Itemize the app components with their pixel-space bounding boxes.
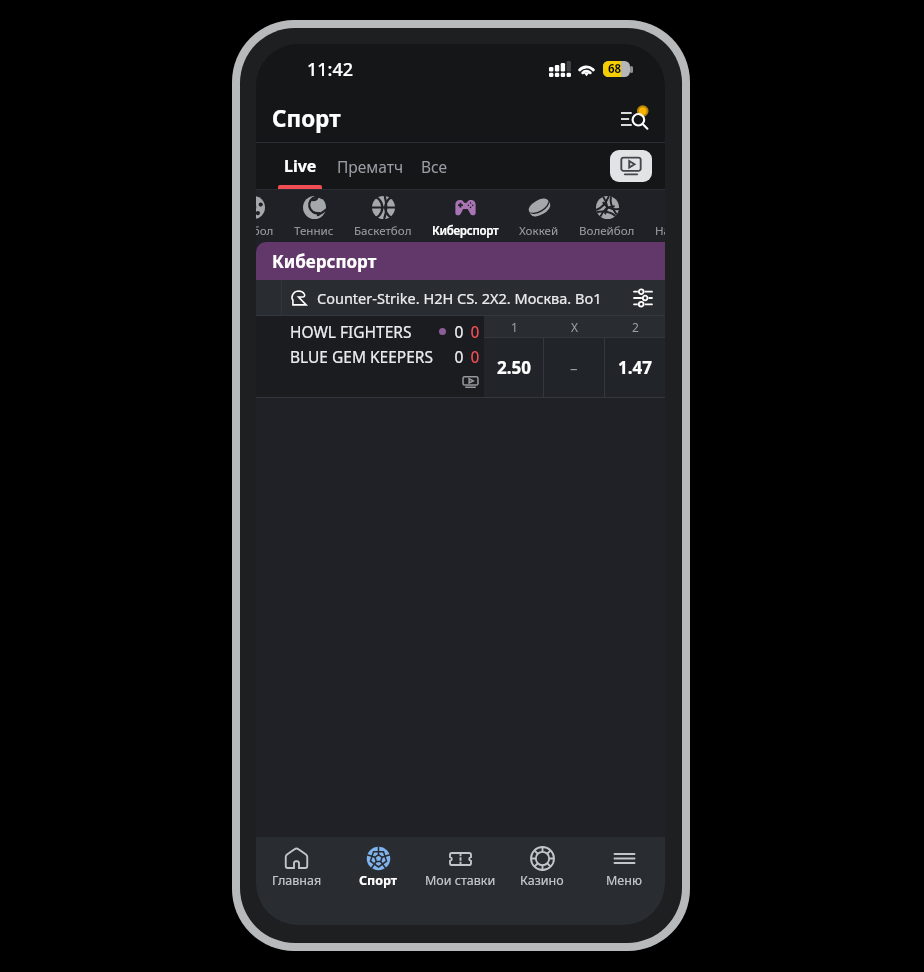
button[interactable]: Video stream bbox=[610, 150, 652, 182]
staticText: X bbox=[571, 319, 579, 335]
button[interactable]: Киберспорт bbox=[422, 190, 509, 242]
staticText: Спорт bbox=[359, 872, 398, 889]
button[interactable]: Главная bbox=[256, 846, 337, 925]
staticText: 11:42 bbox=[307, 57, 354, 82]
button[interactable]: Counter-Strike. H2H CS. 2X2. Москва. Bo1 bbox=[256, 280, 665, 315]
staticText: Хоккей bbox=[519, 223, 559, 239]
staticText: – bbox=[570, 358, 578, 378]
staticText: Баскетбол bbox=[354, 223, 412, 239]
button[interactable]: Меню bbox=[583, 846, 665, 925]
staticText: 0 bbox=[469, 346, 481, 367]
button[interactable]: Футбол bbox=[256, 190, 284, 242]
button[interactable]: Волейбол bbox=[569, 190, 645, 242]
button[interactable]: 1.47 bbox=[605, 338, 665, 397]
button[interactable]: Настольный bbox=[645, 190, 665, 242]
button[interactable]: Хоккей bbox=[509, 190, 569, 242]
button[interactable]: 2.50 bbox=[484, 338, 543, 397]
staticText: BLUE GEM KEEPERS bbox=[290, 346, 433, 367]
staticText: 2.50 bbox=[497, 356, 531, 379]
button[interactable]: Search bbox=[615, 98, 655, 138]
staticText: 1 bbox=[511, 319, 518, 335]
button[interactable]: Казино bbox=[501, 846, 583, 925]
button[interactable]: Киберспорт bbox=[256, 242, 665, 280]
button[interactable]: – bbox=[544, 338, 604, 397]
button[interactable]: Filter bbox=[631, 286, 655, 310]
staticText: Главная bbox=[272, 872, 322, 889]
button[interactable]: Мои ставки bbox=[419, 846, 501, 925]
staticText: Counter-Strike. H2H CS. 2X2. Москва. Bo1 bbox=[317, 288, 602, 308]
staticText: Теннис bbox=[294, 223, 334, 239]
staticText: Live bbox=[284, 155, 317, 177]
staticText: Киберспорт bbox=[272, 250, 377, 273]
staticText: 0 bbox=[453, 321, 465, 342]
staticText: Казино bbox=[520, 872, 564, 889]
staticText: HOWL FIGHTERS bbox=[290, 321, 412, 342]
staticText: Все bbox=[421, 156, 448, 177]
staticText: Прематч bbox=[337, 156, 404, 177]
button[interactable]: Прематч bbox=[337, 143, 404, 189]
staticText: Футбол bbox=[256, 223, 274, 239]
button[interactable]: Watch stream bbox=[461, 373, 479, 391]
staticText: 2 bbox=[632, 319, 639, 335]
staticText: Киберспорт bbox=[432, 223, 499, 239]
button[interactable]: HOWL FIGHTERS bbox=[256, 316, 484, 397]
staticText: 1.47 bbox=[618, 356, 652, 379]
button[interactable]: Все bbox=[421, 143, 448, 189]
button[interactable]: Live bbox=[278, 143, 322, 189]
staticText: 0 bbox=[469, 321, 481, 342]
staticText: 68 bbox=[608, 61, 622, 77]
staticText: Меню bbox=[606, 872, 642, 889]
button[interactable]: Теннис bbox=[284, 190, 344, 242]
staticText: Мои ставки bbox=[425, 872, 496, 889]
button[interactable]: Спорт bbox=[337, 846, 419, 925]
button[interactable]: Баскетбол bbox=[344, 190, 422, 242]
staticText: Волейбол bbox=[579, 223, 635, 239]
staticText: Спорт bbox=[272, 103, 341, 134]
staticText: 0 bbox=[453, 346, 465, 367]
staticText: Настольный bbox=[655, 223, 665, 239]
